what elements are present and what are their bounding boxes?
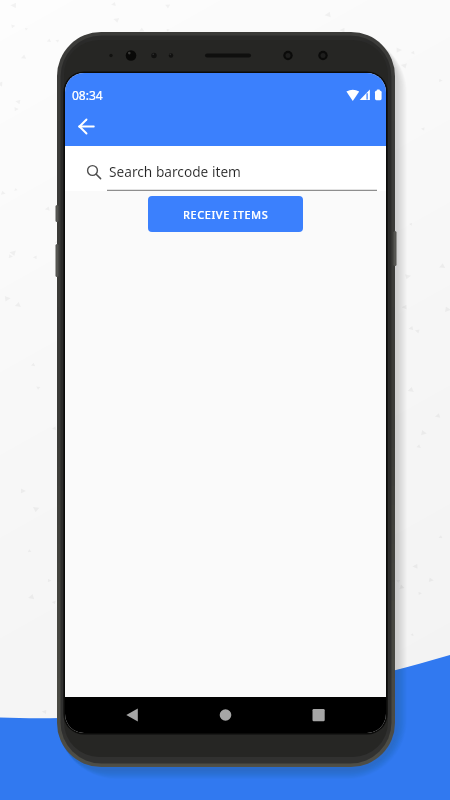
button[interactable]: RECEIVE ITEMS	[148, 196, 303, 232]
staticText: 08:34	[72, 87, 103, 103]
staticText: RECEIVE ITEMS	[183, 207, 269, 222]
staticText: Search barcode item	[109, 162, 241, 181]
button[interactable]: Back	[72, 112, 101, 141]
